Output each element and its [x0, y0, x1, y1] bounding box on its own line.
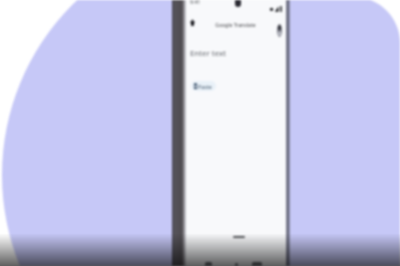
staticText: Paste	[198, 83, 212, 90]
staticText: Google Translate	[215, 22, 256, 29]
staticText: 9:41	[190, 0, 201, 5]
button[interactable]: Saved translations	[186, 16, 199, 29]
button[interactable]: Account	[275, 23, 283, 38]
button[interactable]: Paste	[191, 81, 216, 91]
staticText: Enter text	[190, 48, 227, 58]
